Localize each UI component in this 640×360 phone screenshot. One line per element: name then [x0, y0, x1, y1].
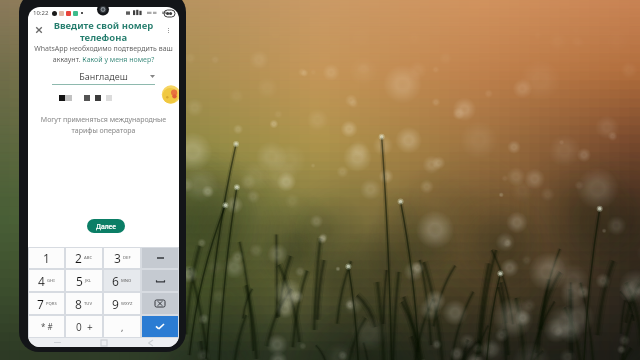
button[interactable]: Далее — [87, 219, 125, 233]
staticText: 4 — [38, 273, 45, 289]
button[interactable]: 8 — [66, 293, 102, 314]
button[interactable]: Close — [32, 23, 46, 37]
staticText: 3 — [114, 250, 121, 266]
button[interactable]: Minus — [142, 248, 178, 268]
staticText: 6 — [112, 273, 119, 289]
staticText: TUV — [84, 301, 93, 307]
staticText: 2 — [75, 250, 82, 266]
staticText: JKL — [85, 278, 92, 284]
button[interactable]: Home — [99, 338, 109, 347]
button[interactable]: 4 — [29, 270, 64, 291]
staticText: DEF — [123, 255, 131, 261]
staticText: 7 — [37, 296, 44, 312]
button[interactable]: Back — [145, 338, 155, 347]
staticText: 5 — [76, 273, 83, 289]
staticText: 8 — [75, 296, 82, 312]
button[interactable]: 1 — [29, 248, 64, 268]
button[interactable]: Бангладеш — [52, 70, 155, 85]
button[interactable]: More options — [161, 23, 175, 37]
button[interactable]: Backspace — [142, 293, 178, 314]
staticText: GHI — [47, 278, 55, 284]
button[interactable]: , — [104, 316, 140, 337]
staticText: Бангладеш — [52, 70, 155, 82]
button[interactable]: 5 — [66, 270, 102, 291]
staticText: Далее — [96, 222, 116, 231]
button[interactable]: 7 — [29, 293, 64, 314]
button[interactable]: 2 — [66, 248, 102, 268]
button[interactable]: Space — [142, 270, 178, 291]
button[interactable]: 3 — [104, 248, 140, 268]
staticText: ABC — [84, 255, 93, 261]
staticText: Введите свой номер телефона — [46, 19, 161, 41]
button[interactable]: * # — [29, 316, 64, 337]
button[interactable]: 9 — [104, 293, 140, 314]
button[interactable]: Recents — [52, 338, 62, 347]
button[interactable]: 6 — [104, 270, 140, 291]
staticText: 9 — [112, 296, 119, 312]
button[interactable]: Phone number field — [28, 93, 179, 103]
staticText: * # — [41, 321, 53, 332]
staticText: Могут применяться международные тарифы о… — [39, 115, 168, 135]
staticText: , — [121, 321, 124, 333]
staticText: 0 + — [76, 320, 93, 334]
staticText: WXYZ — [121, 301, 133, 307]
button[interactable]: Submit — [142, 316, 178, 337]
staticText: MNO — [121, 278, 132, 284]
button[interactable]: 0 + — [66, 316, 102, 337]
staticText: 1 — [43, 250, 50, 266]
staticText: WhatsApp необходимо подтвердить ваш акка… — [33, 44, 174, 64]
staticText: PQRS — [46, 301, 57, 307]
staticText: 10:22 — [33, 9, 49, 17]
